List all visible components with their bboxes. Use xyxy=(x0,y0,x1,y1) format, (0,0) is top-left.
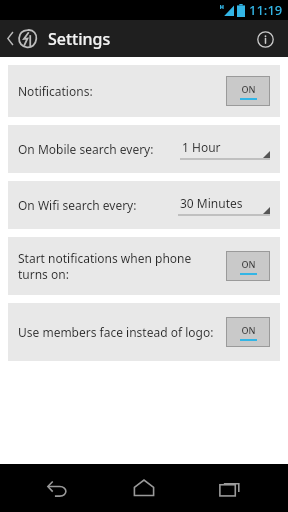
button[interactable]: Back xyxy=(30,468,86,508)
staticText: On Mobile search every: xyxy=(18,141,154,157)
button[interactable]: 30 Minutes xyxy=(178,191,270,219)
button[interactable]: ON xyxy=(226,317,270,347)
button[interactable]: On Wifi search every: xyxy=(8,181,280,229)
staticText: 1 Hour xyxy=(182,139,221,155)
button[interactable]: Use members face instead of logo: xyxy=(8,303,280,361)
staticText: Start notifications when phone turns on: xyxy=(18,250,218,282)
button[interactable]: ON xyxy=(226,251,270,281)
staticText: Use members face instead of logo: xyxy=(18,324,218,340)
button[interactable]: Notifications: xyxy=(8,65,280,117)
staticText: ON xyxy=(241,83,256,95)
staticText: Notifications: xyxy=(18,83,218,99)
staticText: ON xyxy=(241,324,256,336)
staticText: 30 Minutes xyxy=(180,195,243,211)
button[interactable]: Navigate up xyxy=(5,24,40,53)
staticText: ON xyxy=(241,258,256,270)
button[interactable]: ON xyxy=(226,76,270,106)
staticText: Settings xyxy=(48,28,111,50)
button[interactable]: About xyxy=(250,24,280,54)
button[interactable]: Home xyxy=(116,468,172,508)
button[interactable]: On Mobile search every: xyxy=(8,125,280,173)
button[interactable]: Start notifications when phone turns on: xyxy=(8,237,280,295)
staticText: 11:19 xyxy=(249,1,283,19)
button[interactable]: Recent apps xyxy=(202,468,258,508)
button[interactable]: 1 Hour xyxy=(180,135,270,163)
staticText: On Wifi search every: xyxy=(18,197,137,213)
